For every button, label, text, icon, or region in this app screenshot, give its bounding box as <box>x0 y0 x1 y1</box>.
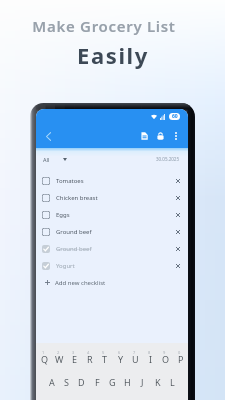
staticText: 3 <box>72 350 75 355</box>
button[interactable]: 3 <box>67 348 82 374</box>
staticText: W <box>55 353 64 365</box>
button[interactable]: 2 <box>52 348 67 374</box>
button[interactable]: 9 <box>158 348 173 374</box>
button[interactable]: Chicken breast <box>36 189 188 206</box>
button[interactable]: 0 <box>173 348 188 374</box>
staticText: 6 <box>118 350 121 355</box>
staticText: Add new checklist <box>55 279 106 287</box>
staticText: Yogurt <box>56 262 75 270</box>
staticText: 0 <box>178 350 181 355</box>
staticText: L <box>170 376 175 388</box>
button[interactable]: 1 <box>37 348 52 374</box>
button[interactable]: G <box>105 376 120 392</box>
button[interactable]: K <box>150 376 165 392</box>
button[interactable]: More options <box>170 130 182 142</box>
button[interactable]: Add new checklist <box>36 274 188 291</box>
staticText: J <box>141 376 144 388</box>
staticText: S <box>64 376 69 388</box>
button[interactable]: Ground beef <box>36 240 188 257</box>
staticText: A <box>49 376 55 388</box>
staticText: Ground beef <box>56 228 92 236</box>
staticText: Q <box>41 353 49 365</box>
staticText: 1 <box>42 350 45 355</box>
button[interactable]: F <box>90 376 105 392</box>
staticText: 2 <box>57 350 60 355</box>
button[interactable]: S <box>59 376 74 392</box>
button[interactable]: 7 <box>128 348 143 374</box>
button[interactable]: Remove item <box>173 193 182 202</box>
staticText: Ground beef <box>56 245 92 253</box>
button[interactable]: Yogurt <box>36 257 188 274</box>
staticText: Y <box>118 353 124 365</box>
staticText: D <box>78 376 85 388</box>
staticText: 8 <box>148 350 151 355</box>
button[interactable]: Remove item <box>173 176 182 185</box>
staticText: Chicken breast <box>56 194 98 202</box>
staticText: Eggs <box>56 211 70 219</box>
staticText: 7 <box>133 350 136 355</box>
button[interactable]: H <box>120 376 135 392</box>
staticText: Make Grocery List <box>32 16 176 36</box>
staticText: K <box>155 376 161 388</box>
button[interactable]: Remove item <box>173 244 182 253</box>
staticText: F <box>95 376 100 388</box>
staticText: 30.05.2025 <box>156 156 180 162</box>
button[interactable]: J <box>135 376 150 392</box>
staticText: U <box>132 353 139 365</box>
staticText: R <box>87 353 93 365</box>
button[interactable]: Tomatoes <box>36 172 188 189</box>
button[interactable]: Ground beef <box>36 223 188 240</box>
staticText: 9 <box>163 350 166 355</box>
button[interactable]: Remove item <box>173 210 182 219</box>
staticText: All <box>43 156 50 163</box>
button[interactable]: D <box>74 376 89 392</box>
staticText: O <box>162 353 170 365</box>
staticText: T <box>102 353 108 365</box>
staticText: E <box>72 353 78 365</box>
staticText: Tomatoes <box>56 177 84 185</box>
button[interactable]: L <box>165 376 180 392</box>
button[interactable]: 8 <box>143 348 158 374</box>
button[interactable]: 5 <box>97 348 112 374</box>
staticText: 4 <box>87 350 90 355</box>
button[interactable]: Lock <box>154 130 166 142</box>
button[interactable]: Remove item <box>173 261 182 270</box>
staticText: Easily <box>77 40 149 70</box>
button[interactable]: All <box>43 156 67 163</box>
button[interactable]: Eggs <box>36 206 188 223</box>
button[interactable]: Back <box>41 129 55 143</box>
staticText: P <box>178 353 184 365</box>
staticText: 5 <box>102 350 105 355</box>
staticText: 60 <box>172 113 178 120</box>
button[interactable]: 4 <box>82 348 97 374</box>
button[interactable]: Remove item <box>173 227 182 236</box>
button[interactable]: Notes <box>138 130 150 142</box>
staticText: G <box>109 376 116 388</box>
staticText: I <box>149 353 153 365</box>
button[interactable]: A <box>44 376 59 392</box>
button[interactable]: 6 <box>113 348 128 374</box>
staticText: H <box>124 376 131 388</box>
